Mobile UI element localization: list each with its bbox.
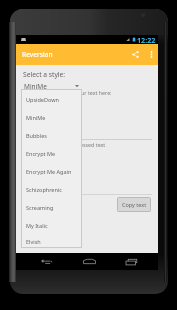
- button[interactable]: Screaming: [21, 198, 82, 216]
- staticText: Processed text: [69, 141, 106, 148]
- staticText: Encrypt Me Again: [26, 168, 72, 175]
- staticText: Elvish: [26, 238, 41, 245]
- button[interactable]: Back: [34, 253, 58, 270]
- button[interactable]: Schizophrenic: [21, 180, 82, 198]
- button[interactable]: Bubbles: [21, 126, 82, 144]
- staticText: Encrypt Me: [26, 150, 56, 157]
- staticText: MiniMe: [24, 82, 47, 91]
- staticText: Copy text: [122, 201, 147, 208]
- staticText: My Italic: [26, 222, 48, 229]
- staticText: Reversian: [22, 50, 53, 59]
- staticText: Schizophrenic: [26, 186, 62, 193]
- button[interactable]: Copy text: [117, 197, 151, 212]
- button[interactable]: Encrypt Me: [21, 144, 82, 162]
- staticText: Select a style:: [23, 70, 66, 79]
- button[interactable]: Encrypt Me Again: [21, 162, 82, 180]
- staticText: Type your text here:: [62, 89, 112, 96]
- staticText: MiniMe: [26, 114, 46, 121]
- button[interactable]: UpsideDown: [21, 90, 82, 108]
- button[interactable]: Share: [126, 44, 144, 65]
- staticText: UpsideDown: [26, 96, 59, 103]
- staticText: 12:22: [137, 35, 156, 44]
- staticText: Bubbles: [26, 132, 47, 139]
- button[interactable]: More options: [144, 44, 158, 65]
- staticText: Screaming: [26, 204, 54, 211]
- button[interactable]: MiniMe: [21, 108, 82, 126]
- button[interactable]: My Italic: [21, 216, 82, 234]
- button[interactable]: Recents: [119, 253, 143, 270]
- button[interactable]: Elvish: [21, 234, 82, 248]
- button[interactable]: Home: [77, 253, 101, 270]
- button[interactable]: MiniMe: [21, 80, 82, 92]
